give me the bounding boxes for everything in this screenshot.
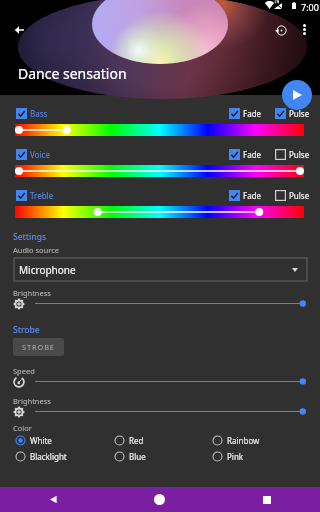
button[interactable]: More options xyxy=(295,20,314,39)
staticText: Microphone xyxy=(19,263,76,277)
button[interactable]: Back xyxy=(10,20,29,39)
button[interactable]: Blue xyxy=(114,449,146,463)
staticText: Pulse xyxy=(289,190,310,201)
button[interactable]: Recent apps xyxy=(213,487,320,512)
staticText: Treble xyxy=(30,190,54,201)
button[interactable]: Voice level xyxy=(15,165,304,177)
button[interactable]: Slider xyxy=(35,297,306,310)
button[interactable]: Reset xyxy=(271,20,291,40)
button[interactable]: Rainbow xyxy=(212,433,260,447)
staticText: Rainbow xyxy=(227,435,260,446)
staticText: Dance sensation xyxy=(18,64,127,83)
staticText: Pulse xyxy=(289,149,310,160)
button[interactable]: Play xyxy=(282,80,312,110)
button[interactable]: Bass level xyxy=(15,124,304,136)
staticText: Pink xyxy=(227,451,244,462)
staticText: Blue xyxy=(129,451,146,462)
button[interactable]: Slider xyxy=(35,375,306,388)
button[interactable]: White xyxy=(15,433,52,447)
button[interactable]: Back xyxy=(0,487,106,512)
button[interactable]: Audio source xyxy=(14,258,307,281)
button[interactable]: Home xyxy=(106,487,213,512)
staticText: Fade xyxy=(243,108,262,119)
staticText: Fade xyxy=(243,149,262,160)
button[interactable]: Pulse xyxy=(275,108,310,119)
button[interactable]: Red xyxy=(114,433,144,447)
staticText: Brightness xyxy=(13,288,51,298)
staticText: Bass xyxy=(30,108,48,119)
button[interactable]: Pulse xyxy=(275,149,310,160)
button[interactable]: Fade xyxy=(229,149,262,160)
staticText: Speed xyxy=(13,366,35,376)
button[interactable]: Treble level xyxy=(15,206,304,218)
staticText: STROBE xyxy=(22,342,55,352)
button[interactable]: Pink xyxy=(212,449,244,463)
staticText: Audio source xyxy=(13,245,60,255)
button[interactable]: Fade xyxy=(229,190,262,201)
button[interactable]: Voice xyxy=(16,149,50,160)
staticText: White xyxy=(30,435,52,446)
staticText: Blacklight xyxy=(30,451,67,462)
staticText: Red xyxy=(129,435,144,446)
staticText: Color xyxy=(13,423,32,433)
staticText: 7:00 xyxy=(301,1,319,13)
staticText: Settings xyxy=(13,231,47,243)
button[interactable]: Pulse xyxy=(275,190,310,201)
staticText: Strobe xyxy=(13,324,40,336)
button[interactable]: Fade xyxy=(229,108,262,119)
staticText: Voice xyxy=(30,149,50,160)
button[interactable]: STROBE xyxy=(13,338,64,356)
staticText: Pulse xyxy=(289,108,310,119)
button[interactable]: Treble xyxy=(16,190,54,201)
button[interactable]: Blacklight xyxy=(15,449,67,463)
button[interactable]: Slider xyxy=(35,405,306,418)
staticText: Fade xyxy=(243,190,262,201)
staticText: Brightness xyxy=(13,396,51,406)
button[interactable]: Bass xyxy=(16,108,48,119)
